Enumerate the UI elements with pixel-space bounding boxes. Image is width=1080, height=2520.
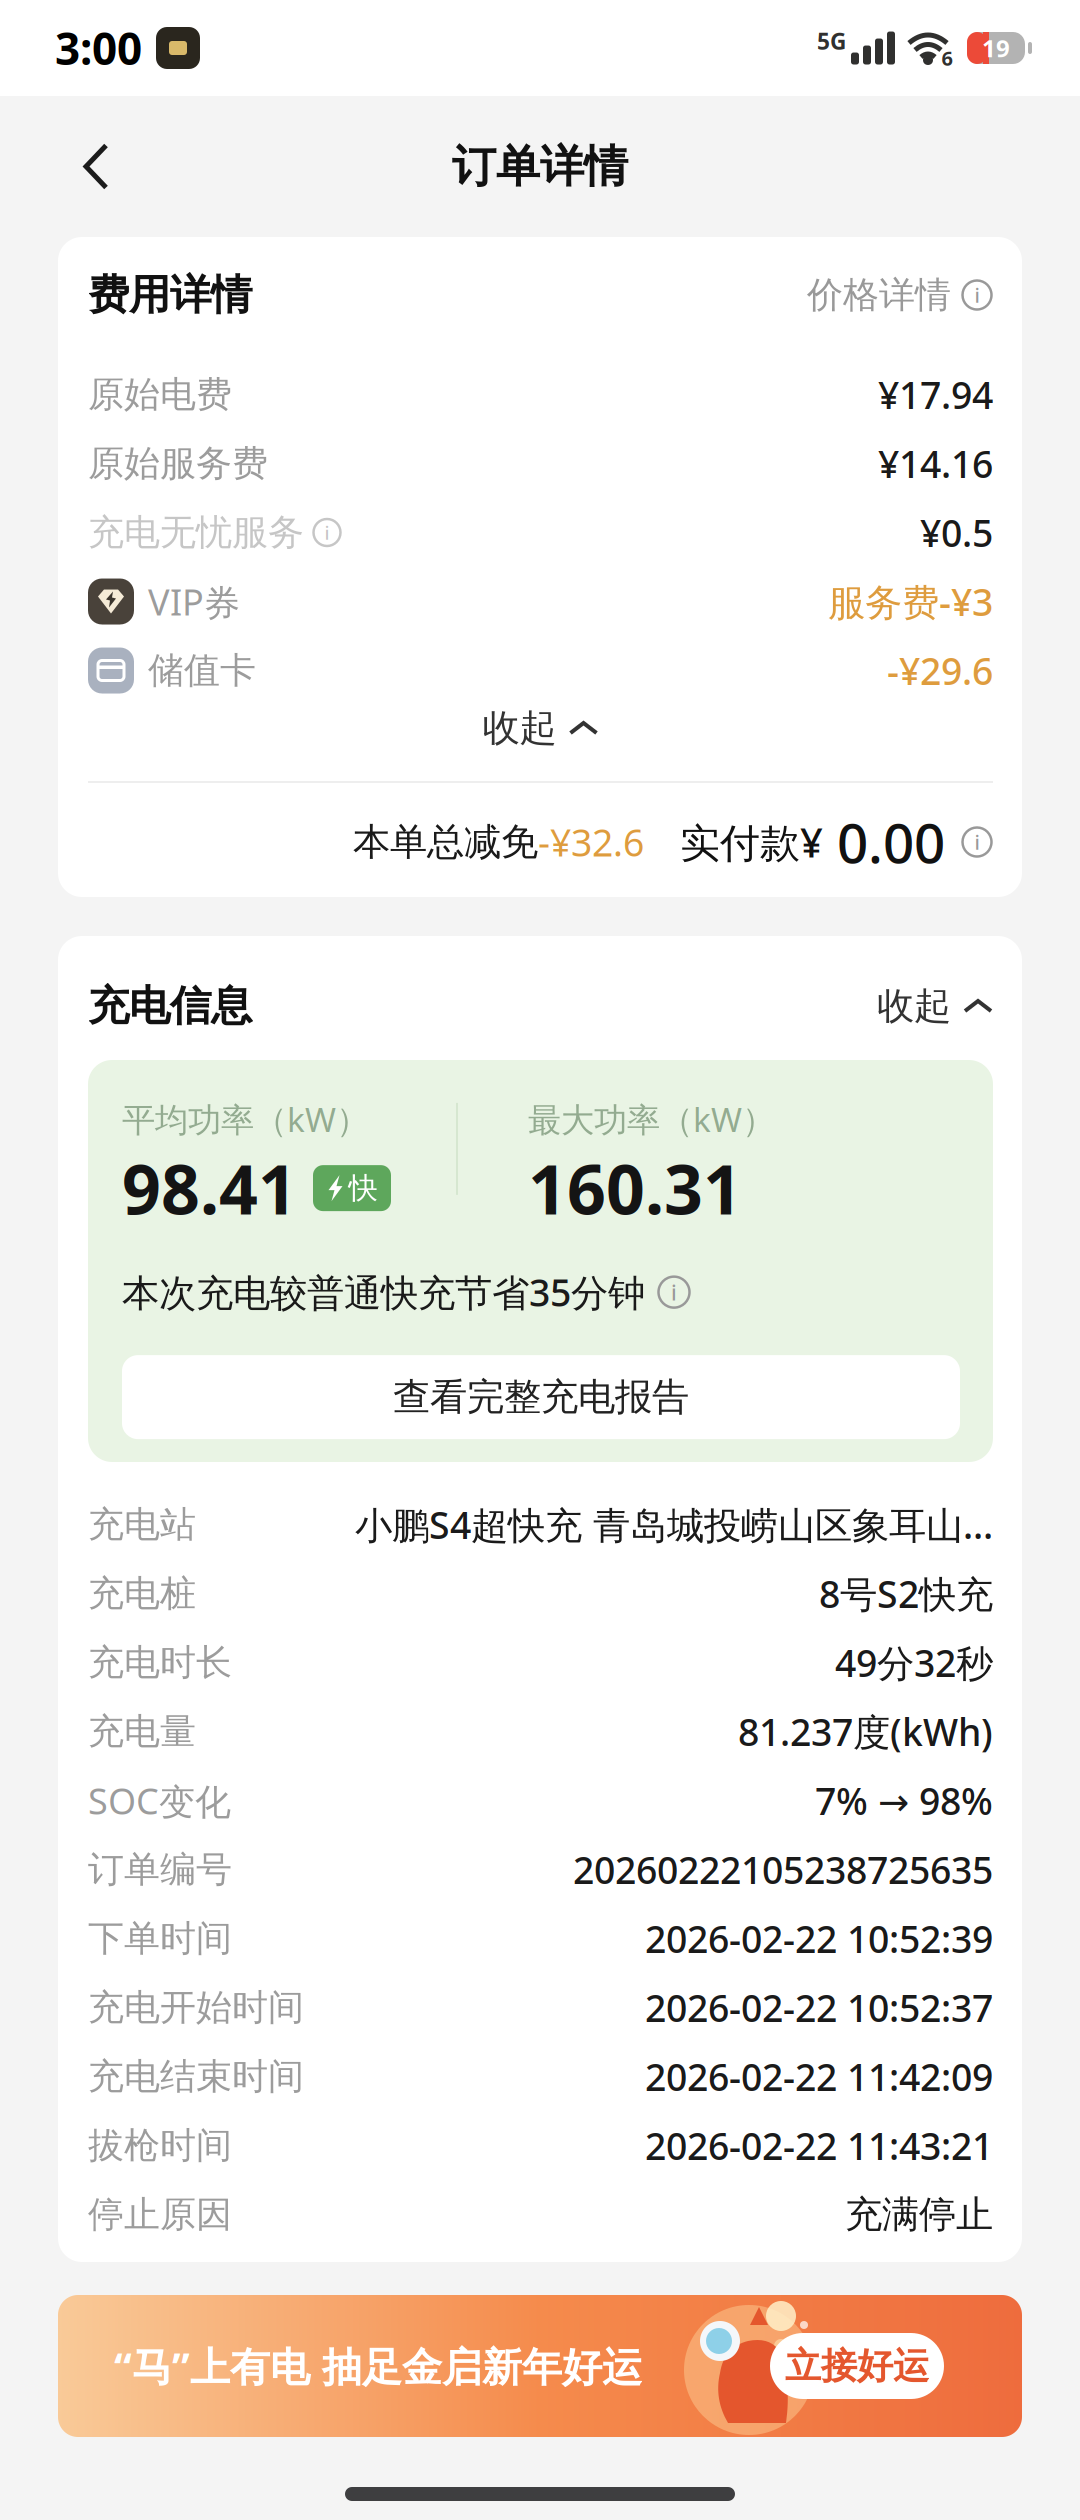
staticText: 收起: [877, 983, 951, 1029]
staticText: 充电无忧服务: [88, 510, 304, 555]
staticText: 小鹏S4超快充 青岛城投崂山区象耳山…: [355, 1500, 993, 1549]
staticText: i: [671, 1278, 677, 1306]
staticText: 充电站: [88, 1502, 196, 1547]
staticText: 查看完整充电报告: [393, 1374, 689, 1420]
staticText: 81.237度(kWh): [738, 1707, 993, 1756]
staticText: 充电信息: [88, 981, 252, 1031]
staticText: ¥0.5: [920, 508, 993, 557]
button[interactable]: Back: [66, 136, 126, 196]
staticText: 快: [348, 1170, 377, 1206]
staticText: 充电量: [88, 1709, 196, 1754]
staticText: 19: [982, 32, 1010, 64]
button[interactable]: “马”上有电 抽足金启新年好运: [58, 2295, 1022, 2437]
staticText: 0.00: [823, 806, 945, 878]
staticText: 原始服务费: [88, 441, 268, 486]
button[interactable]: Info: [961, 826, 993, 858]
staticText: i: [974, 829, 979, 855]
staticText: 49分32秒: [835, 1638, 993, 1687]
staticText: 订单详情: [452, 139, 628, 193]
staticText: 充电结束时间: [88, 2054, 304, 2099]
staticText: 160.31: [528, 1143, 742, 1233]
staticText: 充满停止: [845, 2192, 993, 2237]
staticText: 服务费-¥3: [828, 577, 993, 626]
staticText: 8号S2快充: [819, 1569, 993, 1618]
staticText: ¥14.16: [878, 439, 993, 488]
staticText: -¥32.6: [538, 817, 644, 867]
staticText: 3:00: [55, 19, 142, 77]
staticText: 7% → 98%: [815, 1776, 993, 1825]
staticText: 充电时长: [88, 1640, 232, 1685]
staticText: 98.41: [122, 1143, 297, 1233]
button[interactable]: Info: [657, 1275, 691, 1309]
staticText: 20260222105238725635: [573, 1845, 993, 1894]
staticText: 收起: [482, 705, 556, 751]
staticText: 费用详情: [88, 270, 252, 320]
staticText: i: [974, 282, 979, 308]
staticText: 2026-02-22 11:42:09: [645, 2052, 993, 2101]
staticText: -¥29.6: [887, 646, 993, 695]
staticText: 拔枪时间: [88, 2123, 232, 2168]
staticText: 原始电费: [88, 372, 232, 417]
staticText: ¥17.94: [878, 370, 993, 419]
staticText: 2026-02-22 10:52:39: [645, 1914, 993, 1963]
staticText: 6: [941, 45, 952, 71]
button[interactable]: 收起: [482, 705, 598, 751]
staticText: 平均功率（kW）: [122, 1097, 369, 1141]
staticText: 下单时间: [88, 1916, 232, 1961]
button[interactable]: 查看完整充电报告: [122, 1355, 960, 1439]
staticText: 立接好运: [785, 2344, 929, 2388]
staticText: 5G: [817, 26, 846, 56]
button[interactable]: 价格详情: [807, 273, 993, 317]
staticText: 充电开始时间: [88, 1985, 304, 2030]
staticText: 价格详情: [807, 273, 951, 317]
staticText: 本单总减免: [353, 819, 538, 865]
staticText: 2026-02-22 10:52:37: [645, 1983, 993, 2032]
staticText: 储值卡: [148, 648, 256, 693]
staticText: SOC变化: [88, 1776, 231, 1824]
staticText: 停止原因: [88, 2192, 232, 2237]
button[interactable]: 收起: [877, 983, 993, 1029]
staticText: 实付款¥: [680, 815, 823, 868]
staticText: 2026-02-22 11:43:21: [645, 2121, 993, 2170]
staticText: VIP券: [148, 577, 240, 625]
staticText: 充电桩: [88, 1571, 196, 1616]
staticText: “马”上有电 抽足金启新年好运: [114, 2339, 642, 2392]
staticText: i: [324, 520, 329, 545]
staticText: 订单编号: [88, 1847, 232, 1892]
button[interactable]: Info: [312, 517, 342, 547]
staticText: 最大功率（kW）: [528, 1097, 775, 1141]
staticText: 本次充电较普通快充节省35分钟: [122, 1267, 645, 1317]
